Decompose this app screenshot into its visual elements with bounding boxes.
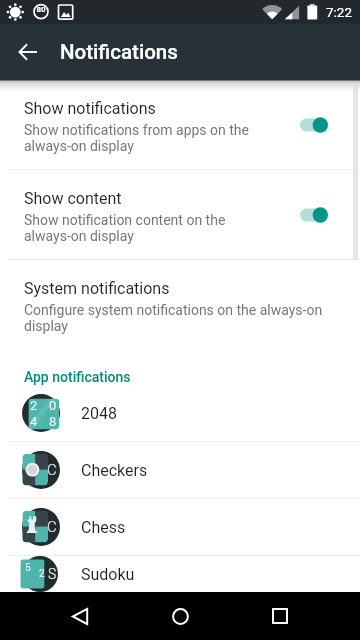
staticText: S	[48, 566, 57, 582]
staticText: 80	[34, 5, 48, 14]
button[interactable]: 2	[0, 385, 360, 441]
staticText: 5	[25, 562, 31, 574]
staticText: Show notification content on the always-…	[24, 212, 226, 244]
button[interactable]: Navigate up	[0, 24, 60, 80]
button[interactable]: System notifications	[0, 260, 360, 349]
staticText: C	[47, 461, 57, 479]
button[interactable]: Show content	[0, 170, 360, 259]
staticText: C	[47, 518, 57, 536]
staticText: 2	[30, 398, 38, 413]
staticText: 2048	[81, 404, 117, 423]
staticText: Sudoku	[81, 565, 135, 584]
button[interactable]: Home	[156, 592, 204, 640]
staticText: Notifications	[60, 40, 178, 64]
staticText: System notifications	[24, 279, 170, 298]
staticText: 4	[30, 414, 38, 429]
staticText: Checkers	[81, 461, 148, 480]
button[interactable]: Recent apps	[256, 592, 304, 640]
staticText: Show content	[24, 189, 122, 208]
staticText: Show notifications from apps on the alwa…	[24, 122, 249, 154]
staticText: 0	[49, 398, 57, 413]
staticText: Configure system notifications on the al…	[24, 302, 323, 334]
staticText: 8	[49, 414, 57, 429]
staticText: 2	[39, 568, 45, 580]
button[interactable]: 5	[0, 556, 360, 592]
button[interactable]: C	[0, 499, 360, 555]
button[interactable]: Back	[56, 592, 104, 640]
staticText: 7:22	[326, 4, 353, 20]
staticText: Show notifications	[24, 99, 156, 118]
staticText: Chess	[81, 518, 126, 537]
staticText: App notifications	[24, 369, 131, 385]
button[interactable]: C	[0, 442, 360, 498]
button[interactable]: Show notifications	[0, 80, 360, 169]
